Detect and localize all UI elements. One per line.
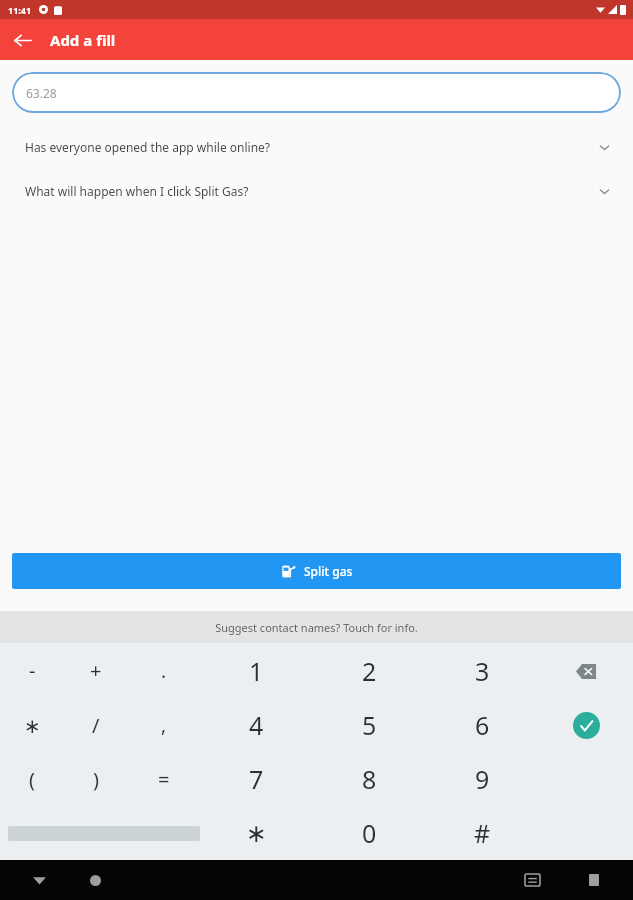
button[interactable]: - bbox=[0, 643, 64, 698]
button[interactable]: + bbox=[64, 643, 128, 698]
staticText: 63.28 bbox=[26, 85, 57, 101]
staticText: 9 bbox=[475, 762, 490, 796]
button[interactable]: 8 bbox=[313, 752, 426, 806]
staticText: 5 bbox=[362, 708, 377, 742]
button[interactable]: Back bbox=[6, 24, 38, 56]
staticText: 11:41 bbox=[8, 4, 32, 16]
button[interactable]: / bbox=[64, 698, 128, 752]
staticText: 6 bbox=[475, 708, 490, 742]
staticText: / bbox=[92, 712, 100, 739]
button[interactable]: 63.28 bbox=[12, 72, 621, 113]
staticText: + bbox=[90, 657, 102, 684]
button[interactable]: , bbox=[128, 698, 200, 752]
button[interactable]: ( bbox=[0, 752, 64, 806]
button[interactable]: Enter bbox=[564, 703, 608, 747]
button[interactable]: 9 bbox=[426, 752, 539, 806]
button[interactable]: = bbox=[128, 752, 200, 806]
staticText: 1 bbox=[249, 654, 264, 688]
button[interactable]: Backspace bbox=[564, 649, 608, 693]
button[interactable] bbox=[0, 806, 200, 860]
button[interactable]: . bbox=[128, 643, 200, 698]
button[interactable]: 5 bbox=[313, 698, 426, 752]
staticText: - bbox=[29, 657, 36, 684]
staticText: . bbox=[161, 658, 167, 684]
button[interactable]: Switch keyboard bbox=[515, 863, 549, 897]
button[interactable]: # bbox=[426, 806, 539, 860]
staticText: ∗ bbox=[24, 714, 41, 737]
staticText: Suggest contact names? Touch for info. bbox=[215, 620, 418, 635]
button[interactable]: Suggest contact names? Touch for info. bbox=[0, 611, 633, 643]
staticText: = bbox=[158, 766, 170, 793]
staticText: Add a fill bbox=[50, 30, 116, 50]
button[interactable]: ∗ bbox=[0, 698, 64, 752]
staticText: ( bbox=[29, 766, 35, 793]
staticText: 8 bbox=[362, 762, 377, 796]
button[interactable]: Hide keyboard bbox=[22, 863, 56, 897]
button[interactable]: What will happen when I click Split Gas? bbox=[0, 179, 633, 203]
button[interactable]: 1 bbox=[200, 643, 313, 698]
button[interactable]: 7 bbox=[200, 752, 313, 806]
staticText: , bbox=[161, 712, 167, 738]
button[interactable]: 6 bbox=[426, 698, 539, 752]
button[interactable]: 3 bbox=[426, 643, 539, 698]
button[interactable]: Has everyone opened the app while online… bbox=[0, 135, 633, 159]
staticText: What will happen when I click Split Gas? bbox=[25, 183, 598, 199]
button[interactable]: Home bbox=[78, 863, 112, 897]
staticText: 2 bbox=[362, 654, 377, 688]
button[interactable]: 0 bbox=[313, 806, 426, 860]
staticText: Has everyone opened the app while online… bbox=[25, 139, 598, 155]
button[interactable]: ∗ bbox=[200, 806, 313, 860]
button[interactable]: 2 bbox=[313, 643, 426, 698]
button[interactable]: Recents bbox=[577, 863, 611, 897]
staticText: Split gas bbox=[304, 563, 353, 579]
staticText: # bbox=[474, 816, 491, 850]
staticText: ) bbox=[93, 766, 99, 793]
staticText: ∗ bbox=[246, 819, 267, 848]
staticText: 4 bbox=[249, 708, 264, 742]
button[interactable]: ) bbox=[64, 752, 128, 806]
button[interactable]: 4 bbox=[200, 698, 313, 752]
button[interactable]: Split gas bbox=[12, 553, 621, 589]
staticText: 3 bbox=[475, 654, 490, 688]
staticText: 7 bbox=[249, 762, 264, 796]
staticText: 0 bbox=[362, 816, 377, 850]
